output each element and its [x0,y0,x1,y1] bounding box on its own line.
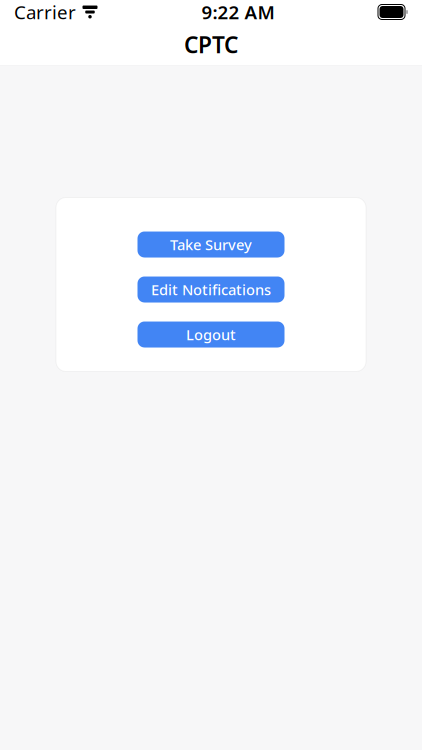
staticText: CPTC [184,29,238,59]
staticText: Take Survey [170,235,252,254]
button[interactable]: Edit Notifications [137,276,284,302]
staticText: Carrier [14,0,76,24]
staticText: Logout [186,325,236,344]
button[interactable]: Logout [137,321,284,347]
button[interactable]: Take Survey [137,231,284,257]
staticText: Edit Notifications [151,280,271,299]
staticText: 9:22 AM [201,0,274,24]
